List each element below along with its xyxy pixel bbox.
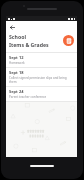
staticText: Homework bbox=[9, 61, 25, 65]
staticText: Collect signed permission slips and brin… bbox=[9, 76, 67, 84]
button[interactable]: Add item bbox=[63, 35, 74, 46]
staticText: Sept 18 bbox=[9, 70, 24, 75]
staticText: Parent teacher conference bbox=[9, 95, 47, 99]
button[interactable]: Sept 18 bbox=[6, 68, 77, 86]
button[interactable]: Sept 24 bbox=[6, 87, 77, 101]
button[interactable]: Back bbox=[9, 24, 16, 31]
staticText: Sept 24 bbox=[9, 89, 24, 94]
staticText: Sept 12 bbox=[9, 55, 24, 60]
staticText: School bbox=[9, 33, 26, 40]
button[interactable]: Sept 12 bbox=[6, 53, 77, 67]
staticText: Items & Grades bbox=[9, 41, 49, 48]
